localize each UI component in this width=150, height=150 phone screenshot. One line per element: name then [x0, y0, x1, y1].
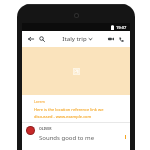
- staticText: Sounds good to me: [39, 134, 95, 142]
- staticText: OLIVER: [39, 126, 52, 131]
- button[interactable]: OLIVER: [22, 123, 130, 145]
- button[interactable]: Call: [116, 34, 126, 44]
- button[interactable]: Search: [37, 34, 47, 44]
- staticText: Lorem: [34, 99, 45, 104]
- button[interactable]: Italy trip: [47, 31, 106, 47]
- staticText: discussed - www.example.com: [34, 114, 92, 119]
- staticText: Italy trip: [62, 35, 87, 43]
- button[interactable]: Video call: [106, 34, 116, 44]
- button[interactable]: Back: [26, 34, 36, 44]
- staticText: Here is the location reference link we: [34, 107, 104, 112]
- button[interactable]: Shared image: [22, 47, 130, 95]
- button[interactable]: Lorem: [22, 95, 130, 122]
- staticText: 19:07: [116, 25, 127, 30]
